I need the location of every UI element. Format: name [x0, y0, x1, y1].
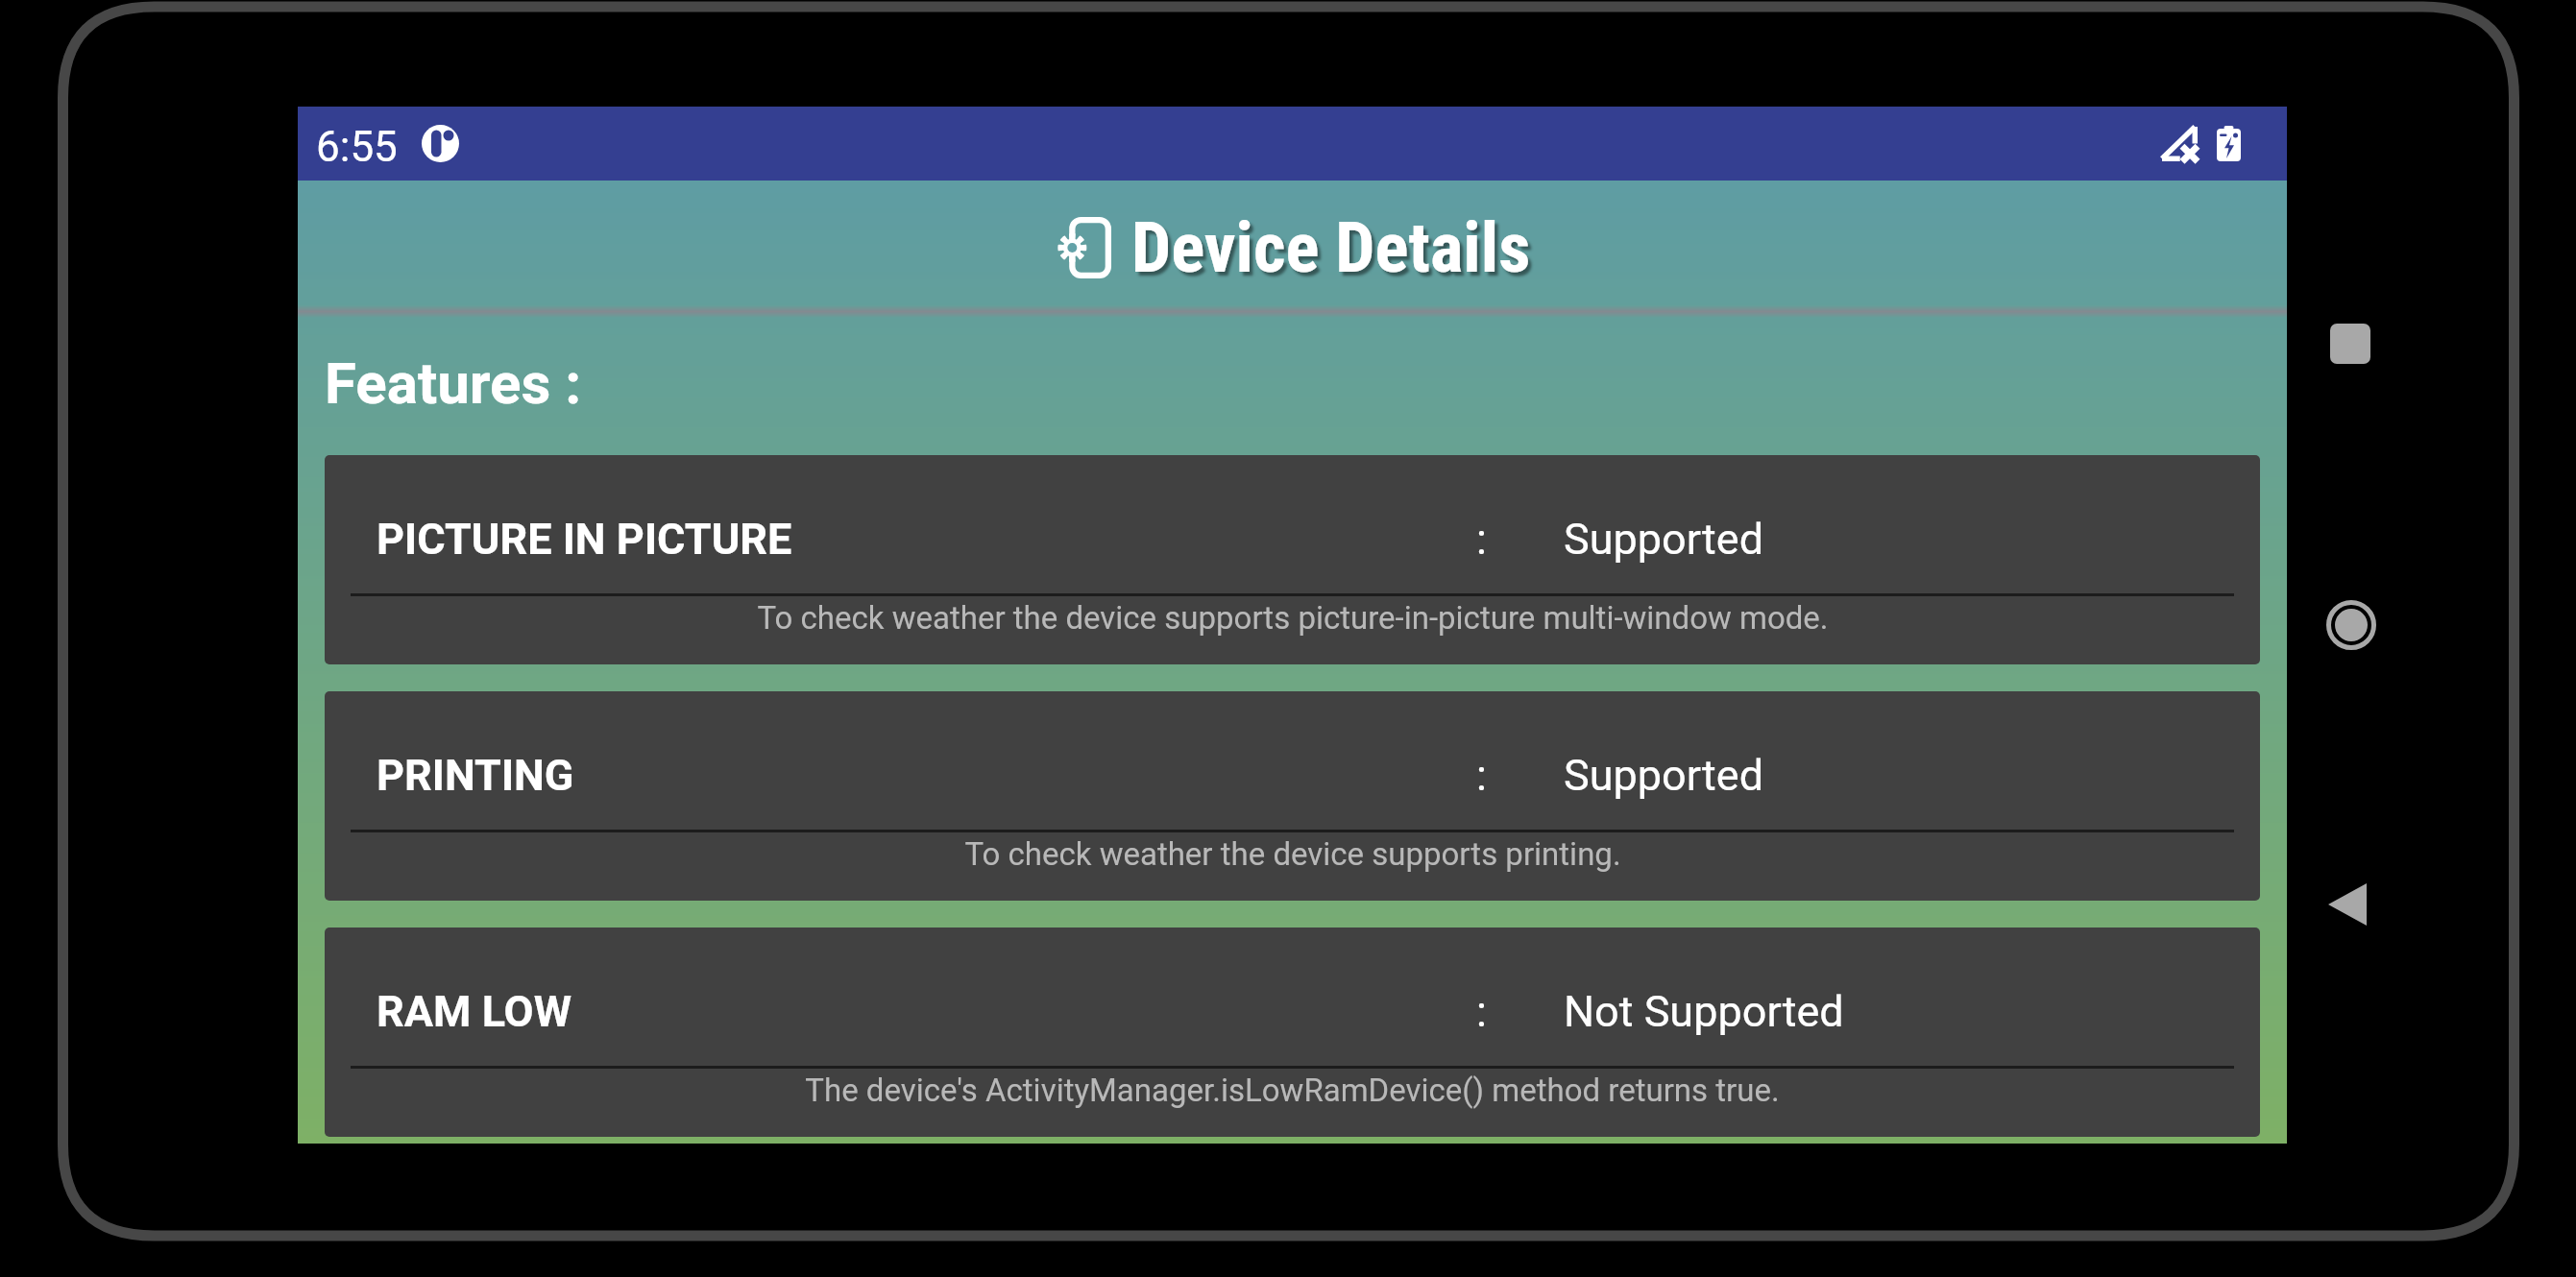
staticText: :: [1476, 514, 1487, 565]
staticText: RAM LOW: [377, 986, 572, 1037]
staticText: Features :: [325, 349, 582, 417]
staticText: PICTURE IN PICTURE: [377, 514, 792, 565]
button[interactable]: Recent apps: [2330, 324, 2370, 364]
staticText: Device Details: [1131, 206, 1531, 289]
button[interactable]: PRINTING: [325, 691, 2260, 901]
staticText: PRINTING: [377, 750, 574, 801]
staticText: 6:55: [316, 122, 398, 172]
button[interactable]: PICTURE IN PICTURE: [325, 455, 2260, 664]
button[interactable]: Home: [2326, 600, 2376, 650]
staticText: Supported: [1564, 514, 1764, 565]
staticText: Supported: [1564, 750, 1764, 801]
button[interactable]: Back: [2328, 883, 2367, 926]
staticText: The device's ActivityManager.isLowRamDev…: [805, 1072, 1780, 1109]
staticText: To check weather the device supports pic…: [757, 599, 1829, 637]
button[interactable]: RAM LOW: [325, 928, 2260, 1137]
staticText: :: [1476, 750, 1487, 801]
staticText: Not Supported: [1564, 986, 1844, 1037]
staticText: :: [1476, 986, 1487, 1037]
staticText: To check weather the device supports pri…: [964, 835, 1621, 873]
